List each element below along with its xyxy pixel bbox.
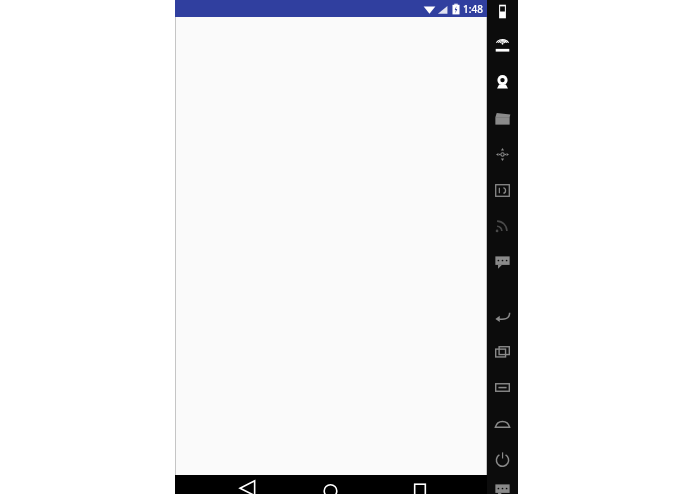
button[interactable]: Device ID	[490, 178, 515, 202]
button[interactable]: Menu	[490, 375, 515, 399]
button[interactable]: Cellular	[490, 213, 515, 237]
button[interactable]: Home	[490, 411, 515, 435]
staticText: 1:48	[463, 2, 483, 16]
button[interactable]: Recent apps	[400, 475, 440, 494]
button[interactable]: Record screen	[490, 106, 515, 130]
button[interactable]: Camera	[490, 70, 515, 94]
button[interactable]: Device	[490, 0, 515, 23]
button[interactable]: GPS	[490, 34, 515, 58]
button[interactable]: Power	[490, 447, 515, 471]
button[interactable]: Back	[490, 303, 515, 327]
button[interactable]: Back	[227, 475, 267, 494]
button[interactable]: Home	[310, 475, 350, 494]
button[interactable]: Messages	[490, 249, 515, 273]
button[interactable]: Overview	[490, 339, 515, 363]
button[interactable]: D-pad	[490, 142, 515, 166]
button[interactable]: More	[490, 477, 515, 494]
